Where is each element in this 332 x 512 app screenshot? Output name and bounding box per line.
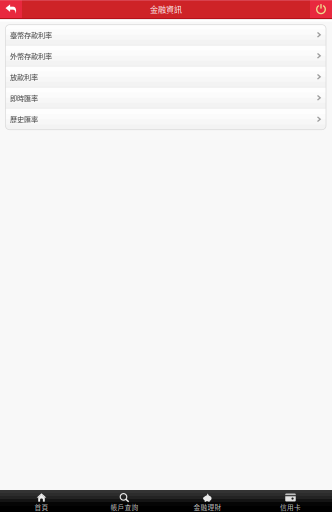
button[interactable]: 放款利率 [5, 67, 326, 88]
button[interactable]: 歷史匯率 [5, 109, 326, 130]
staticText: 放款利率 [10, 72, 38, 82]
button[interactable]: Log out [310, 0, 332, 18]
button[interactable]: 金融理財 [166, 490, 249, 512]
button[interactable]: 即時匯率 [5, 88, 326, 109]
staticText: 金融資訊 [150, 3, 182, 15]
button[interactable]: 外幣存款利率 [5, 46, 326, 67]
button[interactable]: 首頁 [0, 490, 83, 512]
staticText: 首頁 [34, 502, 48, 512]
button[interactable]: Back [0, 0, 22, 18]
button[interactable]: 帳戶查詢 [83, 490, 166, 512]
staticText: 金融理財 [193, 502, 221, 512]
button[interactable]: 臺幣存款利率 [5, 25, 326, 46]
staticText: 信用卡 [280, 502, 301, 512]
staticText: 帳戶查詢 [110, 502, 138, 512]
staticText: 臺幣存款利率 [10, 30, 52, 40]
staticText: 即時匯率 [10, 93, 38, 103]
staticText: 歷史匯率 [10, 114, 38, 124]
button[interactable]: 信用卡 [249, 490, 332, 512]
staticText: 外幣存款利率 [10, 51, 52, 61]
